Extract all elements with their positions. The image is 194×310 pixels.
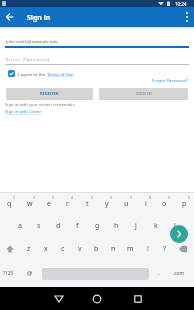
staticText: 7 (130, 195, 133, 200)
staticText: q (7, 199, 12, 209)
button[interactable]: j (126, 217, 145, 235)
button[interactable]: Forgot Password? (152, 77, 188, 83)
staticText: c (61, 244, 65, 254)
button[interactable] (180, 7, 194, 27)
button[interactable]: i (136, 195, 155, 213)
staticText: Sign in with your school credentials (5, 102, 75, 108)
button[interactable]: d (49, 217, 68, 235)
button[interactable]: w (20, 195, 39, 213)
button[interactable] (49, 288, 69, 308)
staticText: o (162, 199, 167, 209)
staticText: ? (163, 244, 167, 254)
button[interactable] (1, 240, 19, 258)
button[interactable]: v (70, 240, 89, 258)
button[interactable]: @ (27, 269, 33, 277)
staticText: y (105, 199, 109, 209)
staticText: p (182, 199, 187, 209)
button[interactable] (87, 288, 107, 308)
button[interactable]: ! (138, 240, 157, 258)
button[interactable]: l (165, 217, 184, 235)
staticText: z (27, 244, 31, 254)
staticText: g (95, 221, 100, 231)
staticText: j (135, 221, 137, 231)
button[interactable]: e (39, 195, 58, 213)
button[interactable]: f (68, 217, 87, 235)
button[interactable]: o (155, 195, 174, 213)
staticText: 3 (52, 195, 55, 200)
staticText: k (154, 221, 158, 231)
staticText: w (27, 199, 33, 209)
staticText: n (111, 244, 116, 254)
staticText: 4 (71, 195, 74, 200)
button[interactable] (128, 288, 148, 308)
button[interactable]: SIGN IN (99, 88, 188, 99)
staticText: h (114, 221, 119, 231)
button[interactable]: REGISTER (6, 88, 93, 99)
staticText: I agree to the (18, 71, 47, 77)
staticText: d (56, 221, 61, 231)
staticText: i (145, 199, 147, 209)
button[interactable]: a (10, 217, 29, 235)
staticText: 10:24 (175, 1, 187, 7)
button[interactable]: john.smith@example.edu (6, 38, 58, 44)
staticText: 2 (33, 195, 36, 200)
staticText: 8 (149, 195, 152, 200)
staticText: b (94, 244, 99, 254)
button[interactable]: y (97, 195, 116, 213)
staticText: Terms of Use (47, 71, 74, 77)
button[interactable]: c (53, 240, 72, 258)
staticText: m (127, 244, 134, 254)
button[interactable]: m (121, 240, 140, 258)
button[interactable]: k (146, 217, 165, 235)
button[interactable]: .com (173, 270, 184, 277)
button[interactable]: . (158, 268, 160, 277)
staticText: t (86, 199, 89, 209)
button[interactable] (0, 7, 20, 27)
staticText: SIGN IN (136, 91, 152, 96)
button[interactable]: u (117, 195, 136, 213)
staticText: v (78, 244, 82, 254)
staticText: r (66, 199, 69, 209)
staticText: REGISTER (40, 91, 59, 96)
button[interactable] (170, 225, 188, 243)
staticText: 5 (91, 195, 94, 200)
button[interactable]: p (175, 195, 194, 213)
button[interactable] (173, 240, 191, 258)
staticText: u (124, 199, 129, 209)
button[interactable]: Sign in with Clever (5, 109, 42, 115)
staticText: 6 (110, 195, 113, 200)
button[interactable]: ? (155, 240, 174, 258)
button[interactable]: t (78, 195, 97, 213)
button[interactable]: q (0, 195, 19, 213)
staticText: 0 (188, 195, 191, 200)
staticText: 9 (168, 195, 171, 200)
button[interactable]: ?123 (3, 270, 14, 277)
button[interactable]: x (36, 240, 55, 258)
button[interactable]: b (87, 240, 106, 258)
button[interactable]: n (104, 240, 123, 258)
button[interactable]: I agree to the (8, 70, 74, 77)
button[interactable]: g (88, 217, 107, 235)
staticText: s (37, 221, 41, 231)
staticText: a (18, 221, 22, 231)
staticText: l (174, 221, 176, 231)
button[interactable]: h (107, 217, 126, 235)
button[interactable]: r (58, 195, 77, 213)
button[interactable]: z (19, 240, 38, 258)
staticText: x (44, 244, 48, 254)
staticText: 1 (13, 195, 16, 200)
staticText: ! (147, 244, 149, 254)
staticText: f (76, 221, 79, 231)
staticText: e (47, 199, 51, 209)
button[interactable]: s (29, 217, 48, 235)
staticText: Sign in (27, 13, 51, 23)
button[interactable]: Enter Password (6, 56, 50, 62)
